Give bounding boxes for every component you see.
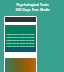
staticText: Psychological Tests — [16, 2, 49, 7]
staticText: Lorem ipsum dolor sit amet consect — [6, 42, 35, 45]
staticText: Lorem ipsum dolor sit amet consect — [6, 36, 35, 39]
staticText: Lorem ipsum dolor sit amet consect — [6, 45, 35, 47]
staticText: Lorem ipsum dolor sit amet consect — [6, 33, 35, 36]
staticText: 365 Days Free Mode — [15, 7, 50, 12]
staticText: Lorem ipsum dolor sit amet consect — [6, 39, 35, 42]
